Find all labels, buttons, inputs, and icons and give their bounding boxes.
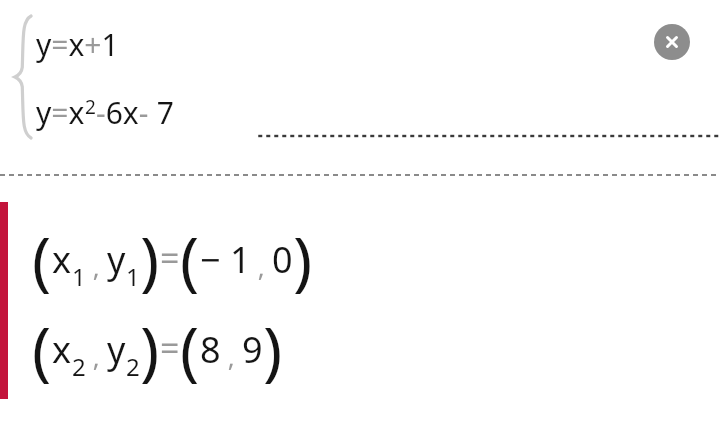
staticText: , (86, 249, 107, 284)
staticText: 2 (72, 350, 86, 383)
staticText: ( (180, 306, 200, 393)
staticText: ) (140, 216, 160, 303)
staticText: , (221, 339, 242, 374)
staticText: = (160, 235, 180, 281)
staticText: ) (293, 216, 313, 303)
staticText: 8 (200, 325, 221, 374)
staticText: ) (140, 306, 160, 393)
staticText: 1 (72, 260, 86, 293)
staticText: , (86, 339, 107, 374)
staticText: 2 (85, 94, 96, 120)
staticText: 7 (149, 92, 174, 133)
staticText: ( (32, 216, 52, 303)
staticText: y (107, 325, 126, 374)
staticText: y=x+1 (36, 24, 119, 65)
staticText: x (52, 325, 72, 374)
staticText: ( (32, 306, 52, 393)
staticText: ( (180, 216, 200, 303)
button[interactable]: Close (654, 24, 690, 60)
staticText: y=x (36, 92, 85, 133)
button[interactable]: ( (32, 216, 313, 303)
staticText: 0 (272, 235, 293, 284)
staticText: y (107, 235, 126, 284)
staticText: − 1 (200, 235, 251, 284)
button[interactable]: ( (32, 306, 283, 393)
staticText: = (160, 325, 180, 371)
staticText: x (52, 235, 72, 284)
staticText: 9 (242, 325, 263, 374)
staticText: 1 (126, 260, 140, 293)
staticText: -6x- (96, 92, 149, 133)
staticText: ) (263, 306, 283, 393)
staticText: 2 (126, 350, 140, 383)
staticText: , (251, 249, 272, 284)
